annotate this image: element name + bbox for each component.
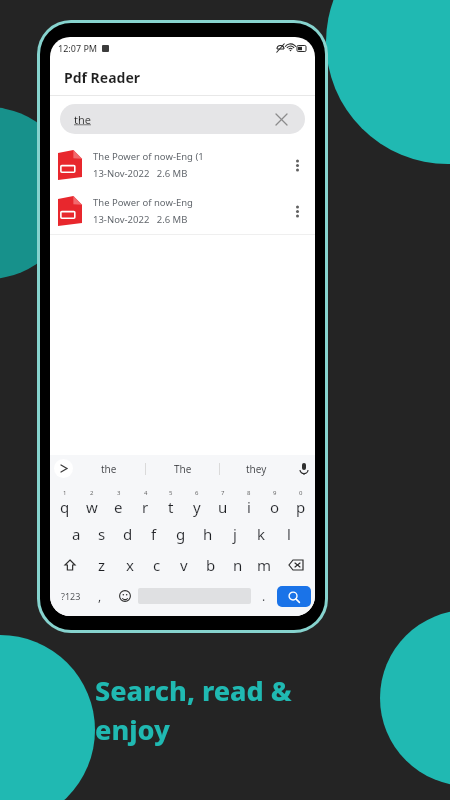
button[interactable]: b xyxy=(197,549,224,580)
staticText: enjoy xyxy=(95,711,170,748)
staticText: d xyxy=(123,524,133,544)
staticText: q xyxy=(60,497,70,517)
staticText: The Power of now-Eng xyxy=(93,196,193,209)
staticText: h xyxy=(203,524,213,544)
staticText: w xyxy=(86,497,98,517)
staticText: the xyxy=(101,462,117,476)
staticText: The Power of now-Eng (1 xyxy=(93,150,204,163)
staticText: Pdf Reader xyxy=(64,68,140,87)
button[interactable]: More options xyxy=(285,153,309,177)
staticText: 13-Nov-2022 2.6 MB xyxy=(93,167,188,180)
staticText: z xyxy=(98,555,106,575)
button[interactable]: 4 xyxy=(132,487,158,518)
staticText: n xyxy=(233,555,243,575)
staticText: 0 xyxy=(299,489,303,497)
button[interactable]: . xyxy=(251,580,277,612)
button[interactable]: Emoji xyxy=(112,580,138,612)
staticText: c xyxy=(153,555,161,575)
staticText: , xyxy=(98,588,102,604)
staticText: Search, read & xyxy=(95,672,292,709)
staticText: y xyxy=(193,497,201,517)
staticText: m xyxy=(257,555,272,575)
button[interactable]: The Power of now-Eng xyxy=(50,188,315,234)
staticText: k xyxy=(257,524,266,544)
staticText: f xyxy=(151,524,157,544)
button[interactable]: 9 xyxy=(262,487,288,518)
staticText: j xyxy=(233,524,237,544)
button[interactable]: 6 xyxy=(184,487,210,518)
staticText: 6 xyxy=(195,489,199,497)
button[interactable]: h xyxy=(194,518,221,549)
button[interactable]: 0 xyxy=(288,487,314,518)
staticText: p xyxy=(296,497,306,517)
button[interactable]: d xyxy=(115,518,141,549)
staticText: The xyxy=(174,462,192,476)
button[interactable]: The Power of now-Eng (1 xyxy=(50,142,315,188)
staticText: v xyxy=(180,555,188,575)
button[interactable]: 7 xyxy=(210,487,236,518)
button[interactable]: Backspace xyxy=(278,549,313,580)
staticText: 7 xyxy=(221,489,225,497)
staticText: 8 xyxy=(247,489,251,497)
button[interactable]: l xyxy=(275,518,302,549)
button[interactable]: f xyxy=(141,518,167,549)
button[interactable]: 1 xyxy=(51,487,78,518)
button[interactable]: 5 xyxy=(158,487,184,518)
button[interactable]: The xyxy=(146,455,219,482)
button[interactable]: k xyxy=(248,518,275,549)
staticText: t xyxy=(168,497,174,517)
staticText: 9 xyxy=(273,489,277,497)
button[interactable]: m xyxy=(251,549,278,580)
button[interactable]: z xyxy=(88,549,116,580)
button[interactable]: More options xyxy=(285,199,309,223)
staticText: u xyxy=(218,497,228,517)
staticText: s xyxy=(98,524,106,544)
staticText: 12:07 PM xyxy=(58,42,98,54)
button[interactable]: , xyxy=(88,580,112,612)
staticText: a xyxy=(72,524,81,544)
staticText: 4 xyxy=(144,489,148,497)
button[interactable]: the xyxy=(73,455,145,482)
staticText: i xyxy=(247,497,251,517)
button[interactable]: 8 xyxy=(236,487,262,518)
staticText: e xyxy=(114,497,123,517)
staticText: . xyxy=(262,588,266,604)
staticText: g xyxy=(176,524,186,544)
button[interactable]: c xyxy=(143,549,170,580)
staticText: r xyxy=(142,497,149,517)
staticText: the xyxy=(74,112,91,127)
button[interactable]: a xyxy=(63,518,89,549)
button[interactable]: g xyxy=(167,518,194,549)
button[interactable]: s xyxy=(89,518,115,549)
staticText: 13-Nov-2022 2.6 MB xyxy=(93,213,188,226)
staticText: o xyxy=(270,497,280,517)
button[interactable]: Expand xyxy=(54,459,73,478)
button[interactable]: v xyxy=(170,549,197,580)
staticText: l xyxy=(287,524,291,544)
staticText: 2 xyxy=(90,489,94,497)
button[interactable]: j xyxy=(221,518,248,549)
button[interactable]: Voice input xyxy=(293,455,315,482)
staticText: 3 xyxy=(117,489,121,497)
staticText: x xyxy=(126,555,134,575)
staticText: b xyxy=(206,555,216,575)
button[interactable]: 3 xyxy=(105,487,132,518)
button[interactable]: Search xyxy=(277,586,311,607)
button[interactable]: they xyxy=(220,455,293,482)
button[interactable]: ?123 xyxy=(54,580,88,612)
staticText: 5 xyxy=(169,489,173,497)
staticText: ?123 xyxy=(61,590,81,602)
button[interactable]: Shift xyxy=(52,549,88,580)
button[interactable]: n xyxy=(224,549,251,580)
button[interactable]: the xyxy=(60,104,305,134)
button[interactable]: Clear xyxy=(271,109,291,129)
button[interactable]: x xyxy=(116,549,143,580)
staticText: 1 xyxy=(63,489,67,497)
staticText: they xyxy=(246,462,267,476)
button[interactable]: 2 xyxy=(78,487,105,518)
